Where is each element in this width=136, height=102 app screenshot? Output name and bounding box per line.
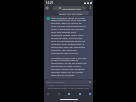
staticText: donne moi des idees: [59, 12, 83, 15]
button[interactable]: Forward: [56, 91, 61, 96]
staticText: Voici quelques idees de sujets interessa…: [51, 16, 87, 55]
staticText: Send a message...: [47, 81, 67, 84]
button[interactable]: donne moi des idees: [58, 11, 89, 15]
button[interactable]: Tabs: [77, 91, 82, 96]
staticText: 14:21: [46, 1, 54, 5]
button[interactable]: Back: [45, 91, 50, 96]
button[interactable]: Home: [66, 91, 71, 96]
button[interactable]: Menu: [87, 91, 92, 96]
button[interactable]: Send a message...: [45, 80, 92, 84]
staticText: chat.openai.com: [62, 7, 81, 10]
staticText: ChatGPT may produce inaccurate informati…: [47, 84, 90, 91]
staticText: N'hesitez surtout pas a me dire si vous …: [51, 56, 87, 77]
button[interactable]: More options: [89, 6, 92, 9]
button[interactable]: chat.openai.com: [53, 6, 86, 10]
button[interactable]: Tabs: [45, 6, 48, 9]
